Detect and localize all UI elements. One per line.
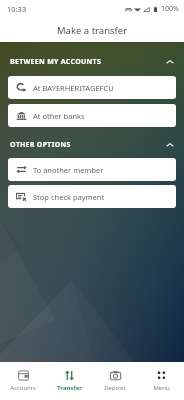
staticText: Make a transfer <box>57 24 128 37</box>
staticText: Transfer <box>57 384 82 392</box>
staticText: 100% <box>161 4 179 14</box>
button[interactable]: Deposit <box>92 370 138 392</box>
staticText: BETWEEN MY ACCOUNTS <box>10 57 102 67</box>
staticText: OTHER OPTIONS <box>10 140 71 150</box>
button[interactable]: Accounts <box>0 370 46 392</box>
staticText: Stop check payment <box>33 192 105 202</box>
button[interactable]: Menu <box>138 370 184 392</box>
staticText: Deposit <box>104 384 126 392</box>
staticText: At BAYERHERITAGEFCU <box>33 83 114 93</box>
staticText: Accounts <box>10 384 36 392</box>
button[interactable]: Transfer <box>46 370 92 392</box>
button[interactable]: At other banks <box>8 104 176 127</box>
button[interactable]: BETWEEN MY ACCOUNTS <box>10 53 175 71</box>
staticText: To another member <box>33 165 104 175</box>
staticText: At other banks <box>33 111 85 121</box>
button[interactable]: At BAYERHERITAGEFCU <box>8 76 176 99</box>
staticText: 10:33 <box>7 4 27 14</box>
staticText: Menu <box>153 384 170 392</box>
button[interactable]: To another member <box>8 158 176 181</box>
button[interactable]: Stop check payment <box>8 185 176 208</box>
button[interactable]: OTHER OPTIONS <box>10 136 175 154</box>
